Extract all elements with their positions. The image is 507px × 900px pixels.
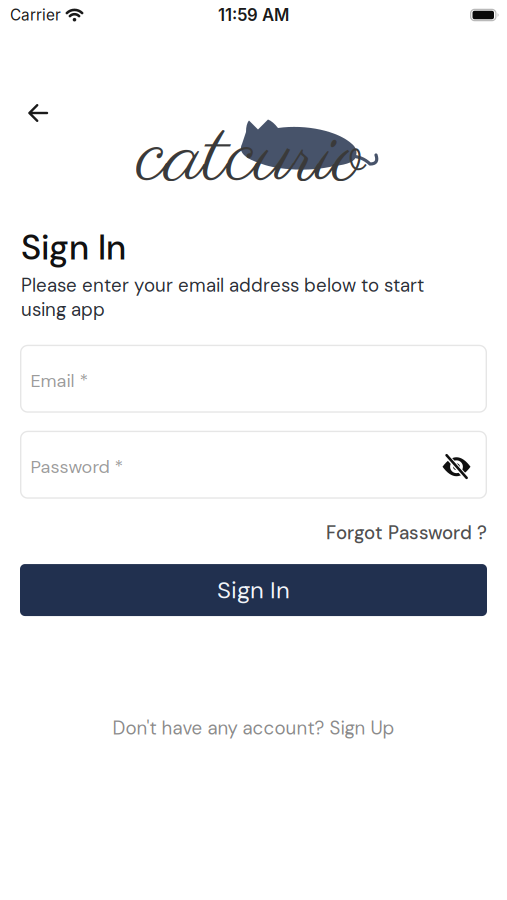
staticText: Please enter your email address below to…: [21, 273, 424, 322]
staticText: Sign In: [21, 225, 126, 270]
button[interactable]: Show password: [442, 454, 471, 479]
staticText: 11:59 AM: [218, 5, 289, 25]
staticText: Forgot Password ?: [326, 521, 487, 545]
staticText: Carrier: [10, 6, 61, 24]
button[interactable]: Email *: [20, 345, 487, 413]
button[interactable]: Sign In: [20, 564, 487, 616]
staticText: Sign In: [217, 574, 290, 606]
staticText: catcurio: [137, 101, 365, 217]
staticText: Email *: [30, 369, 88, 392]
button[interactable]: Back: [24, 99, 52, 127]
button[interactable]: Forgot Password ?: [326, 521, 487, 545]
staticText: Password *: [30, 455, 123, 478]
button[interactable]: Don't have any account? Sign Up: [112, 716, 394, 740]
button[interactable]: Password *: [20, 431, 487, 499]
staticText: Don't have any account? Sign Up: [112, 716, 394, 740]
